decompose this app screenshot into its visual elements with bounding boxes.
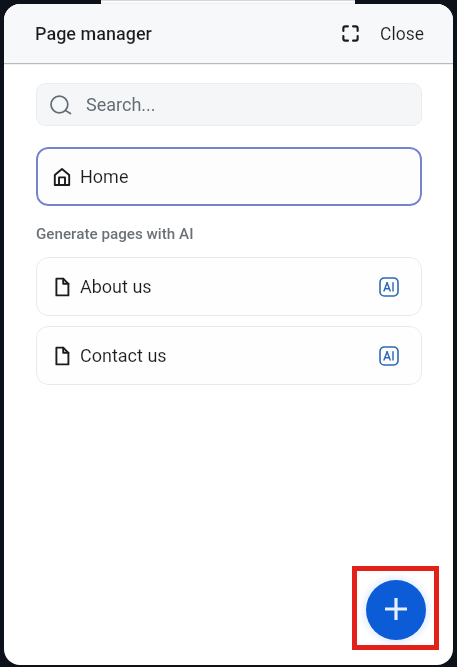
staticText: Contact us <box>80 345 167 366</box>
button[interactable]: Fullscreen <box>336 21 364 49</box>
staticText: Close <box>380 24 424 45</box>
staticText: Search... <box>86 94 156 115</box>
button[interactable]: About us <box>36 257 422 316</box>
button[interactable]: Search... <box>36 83 422 126</box>
button[interactable]: Add page <box>366 580 426 640</box>
button[interactable]: Close <box>380 18 424 51</box>
staticText: About us <box>80 276 152 297</box>
staticText: Home <box>80 166 129 187</box>
staticText: Page manager <box>35 23 152 44</box>
staticText: Generate pages with AI <box>36 225 194 243</box>
button[interactable]: Contact us <box>36 326 422 385</box>
button[interactable]: Home <box>36 147 422 206</box>
